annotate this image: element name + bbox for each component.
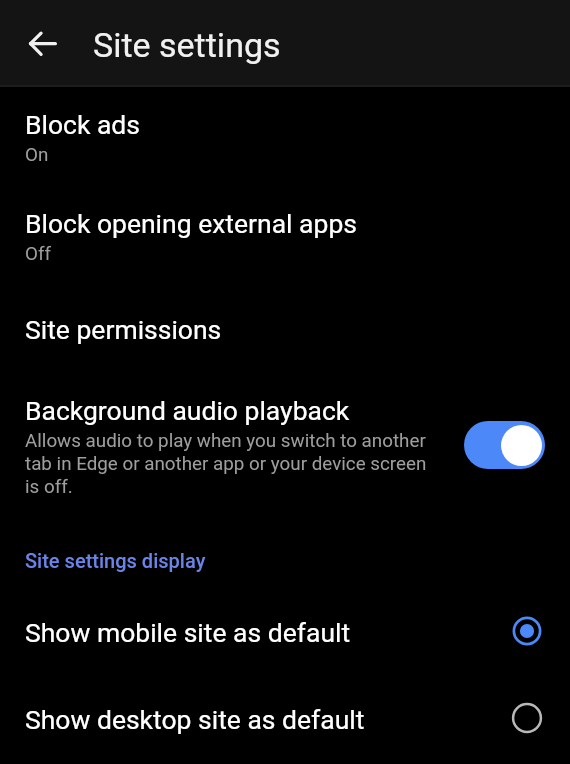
staticText: Site settings display — [25, 549, 206, 572]
staticText: Site settings — [93, 25, 281, 65]
staticText: Allows audio to play when you switch to … — [25, 430, 437, 498]
button[interactable]: Block ads — [0, 96, 570, 184]
staticText: Off — [25, 243, 52, 265]
button[interactable]: Block opening external apps — [0, 195, 570, 283]
button[interactable]: Site permissions — [0, 300, 570, 362]
button[interactable]: Show desktop site as default — [0, 687, 570, 749]
button[interactable]: Background audio playback — [0, 381, 570, 511]
staticText: Site permissions — [25, 314, 222, 345]
staticText: Background audio playback — [25, 395, 350, 426]
button[interactable]: Show mobile site as default — [0, 600, 570, 662]
staticText: Show desktop site as default — [25, 704, 365, 735]
staticText: Show mobile site as default — [25, 617, 351, 648]
button[interactable]: Background audio playback, on — [464, 421, 545, 469]
button[interactable]: Navigate up — [19, 20, 67, 68]
staticText: Block opening external apps — [25, 208, 357, 239]
staticText: On — [25, 144, 49, 166]
staticText: Block ads — [25, 109, 140, 140]
